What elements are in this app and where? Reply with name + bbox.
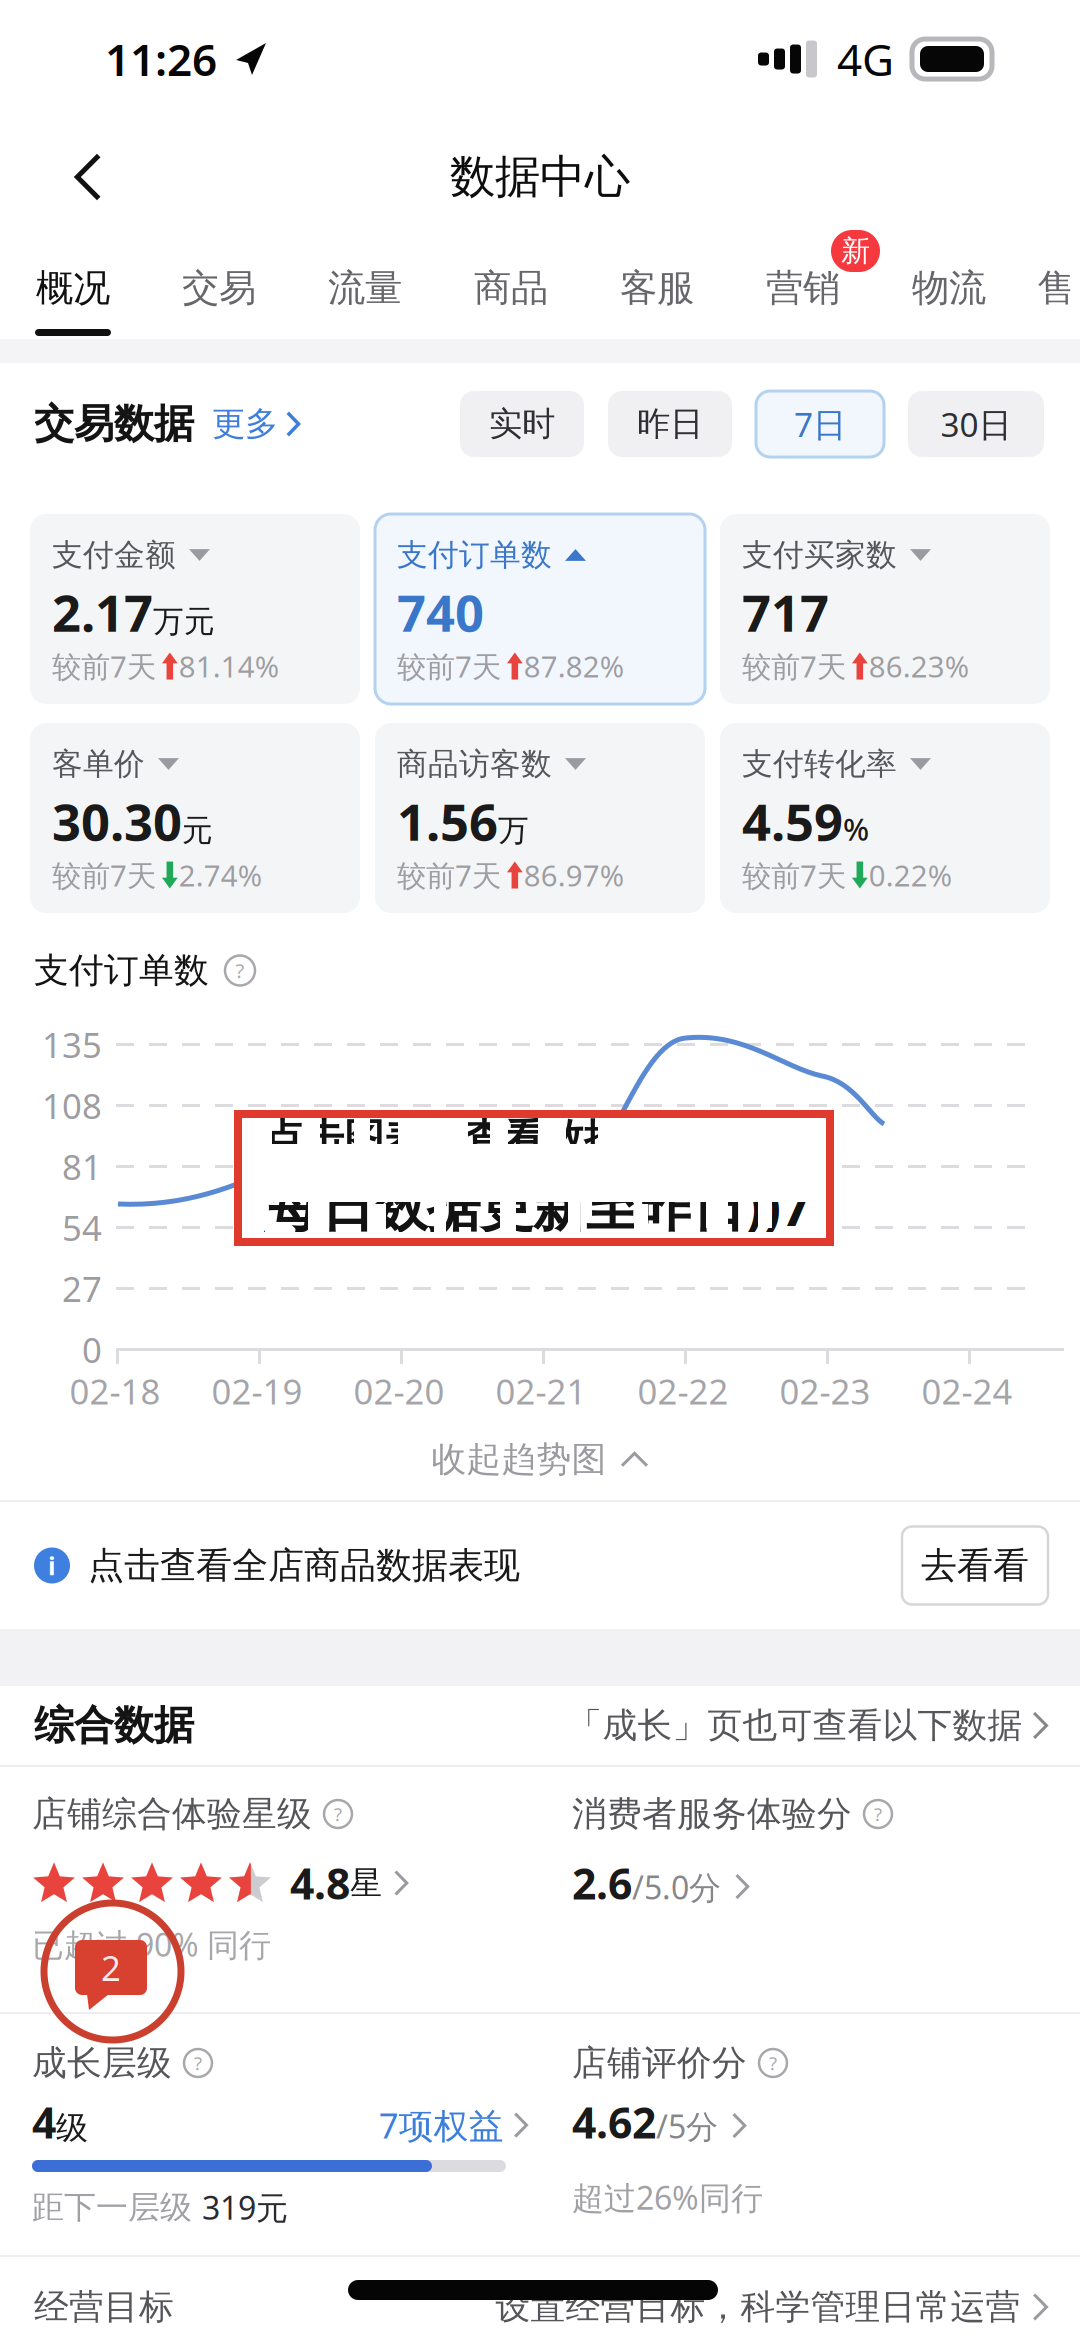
staticText: 级 xyxy=(56,2108,88,2147)
staticText: 已超过 90% 同行 xyxy=(32,1923,271,1965)
staticText: 较前7天 xyxy=(742,855,846,894)
staticText: 7日 xyxy=(794,402,846,446)
staticText: 11:26 xyxy=(105,30,217,88)
staticText: 元 xyxy=(182,812,213,849)
staticText: 支付金额 xyxy=(52,536,176,574)
staticText: /5.0分 xyxy=(632,1866,721,1908)
staticText: 0.22% xyxy=(869,855,952,894)
staticText: 135 xyxy=(42,1021,102,1067)
staticText: 交易数据 xyxy=(34,399,194,448)
staticText: 7项权益 xyxy=(379,2102,504,2148)
staticText: 较前7天 xyxy=(52,855,156,894)
staticText: ? xyxy=(769,2051,777,2075)
staticText: 319元 xyxy=(202,2186,288,2228)
button[interactable]: 支付金额 xyxy=(30,514,360,704)
button[interactable]: 物流 xyxy=(876,236,1022,339)
button[interactable]: 实时 xyxy=(460,391,584,457)
button[interactable]: 客服 xyxy=(584,236,730,339)
button[interactable]: 客单价 xyxy=(30,723,360,913)
staticText: 点击图表可查看数据 xyxy=(264,1114,624,1163)
staticText: 较前7天 xyxy=(397,646,501,685)
staticText: 昨日 xyxy=(637,403,703,444)
button[interactable]: 4.62 xyxy=(572,2098,1038,2146)
staticText: 支付订单数 xyxy=(397,536,552,574)
staticText: 物流 xyxy=(912,265,986,311)
staticText: 营销 xyxy=(766,265,840,311)
staticText: 4G xyxy=(837,30,894,88)
staticText: % xyxy=(843,808,869,849)
button[interactable]: 更多 xyxy=(194,389,300,459)
staticText: ? xyxy=(194,2051,202,2075)
staticText: 87.82% xyxy=(524,646,624,685)
button[interactable]: 商品 xyxy=(438,236,584,339)
staticText: 「成长」页也可查看以下数据 xyxy=(568,1704,1023,1747)
button[interactable]: 经营目标 xyxy=(0,2257,1080,2337)
staticText: 收起趋势图 xyxy=(431,1438,606,1481)
staticText: 4.62 xyxy=(572,2094,656,2150)
staticText: ? xyxy=(235,957,244,984)
button[interactable]: 收起趋势图 xyxy=(0,1419,1080,1500)
staticText: 经营目标 xyxy=(34,2286,174,2328)
button[interactable]: 昨日 xyxy=(608,391,732,457)
staticText: 86.23% xyxy=(869,646,969,685)
staticText: 02-24 xyxy=(921,1368,1012,1414)
staticText: 实时 xyxy=(489,403,555,444)
staticText: ? xyxy=(334,1802,342,1826)
staticText: 支付转化率 xyxy=(742,745,897,783)
staticText: 数据中心 xyxy=(450,149,630,205)
staticText: 星 xyxy=(350,1863,382,1903)
staticText: 30.30 xyxy=(52,787,182,855)
button[interactable]: 4.8 xyxy=(32,1857,572,1909)
staticText: 点击查看全店商品数据表现 xyxy=(88,1543,520,1588)
staticText: 新 xyxy=(841,233,870,269)
staticText: 1.56 xyxy=(397,787,498,855)
staticText: 超过26%同行 xyxy=(572,2176,763,2218)
staticText: 支付订单数 xyxy=(34,949,209,992)
staticText: 2.6 xyxy=(572,1855,632,1911)
staticText: 740 xyxy=(397,578,484,646)
button[interactable]: 30日 xyxy=(908,391,1044,457)
staticText: 较前7天 xyxy=(52,646,156,685)
staticText: 02-22 xyxy=(637,1368,728,1414)
staticText: 2.17 xyxy=(52,578,153,646)
button[interactable]: 支付买家数 xyxy=(720,514,1050,704)
staticText: 支付买家数 xyxy=(742,536,897,574)
button[interactable]: 概况 xyxy=(0,236,146,339)
button[interactable]: 流量 xyxy=(292,236,438,339)
staticText: 商品 xyxy=(474,265,548,311)
staticText: 27 xyxy=(62,1265,102,1311)
staticText: (每日数据更新至昨日))7 xyxy=(250,1170,812,1241)
button[interactable]: 「成长」页也可查看以下数据 xyxy=(568,1690,1048,1760)
staticText: 02-21 xyxy=(495,1368,586,1414)
button[interactable]: 7日 xyxy=(756,391,884,457)
staticText: 717 xyxy=(742,578,829,646)
staticText: 02-20 xyxy=(353,1368,444,1414)
staticText: 概况 xyxy=(36,265,110,311)
button[interactable]: 支付订单数 xyxy=(375,514,705,704)
staticText: 更多 xyxy=(212,403,278,444)
button[interactable]: 去看看 xyxy=(902,1526,1048,1604)
button[interactable]: 商品访客数 xyxy=(375,723,705,913)
staticText: 4 xyxy=(32,2094,56,2150)
staticText: 设置经营目标，科学管理日常运营 xyxy=(496,2286,1021,2328)
button[interactable]: 支付转化率 xyxy=(720,723,1050,913)
button[interactable]: 交易 xyxy=(146,236,292,339)
button[interactable]: 营销 xyxy=(730,236,876,339)
staticText: 较前7天 xyxy=(742,646,846,685)
staticText: /5分 xyxy=(656,2105,718,2147)
staticText: 成长层级 xyxy=(32,2042,172,2084)
staticText: 万元 xyxy=(153,603,215,640)
staticText: 综合数据 xyxy=(34,1701,194,1750)
staticText: 2.74% xyxy=(179,855,262,894)
button[interactable]: 7项权益 xyxy=(379,2102,528,2148)
staticText: 售 xyxy=(1037,265,1074,311)
button[interactable]: 2.6 xyxy=(572,1857,1038,1909)
button[interactable]: 售 xyxy=(1022,236,1080,339)
staticText: 81.14% xyxy=(179,646,279,685)
staticText: 客单价 xyxy=(52,745,145,783)
staticText: 108 xyxy=(42,1082,102,1128)
staticText: 流量 xyxy=(328,265,402,311)
button[interactable]: 返回 xyxy=(38,127,138,227)
staticText: 86.97% xyxy=(524,855,624,894)
staticText: 2 xyxy=(101,1944,121,1990)
